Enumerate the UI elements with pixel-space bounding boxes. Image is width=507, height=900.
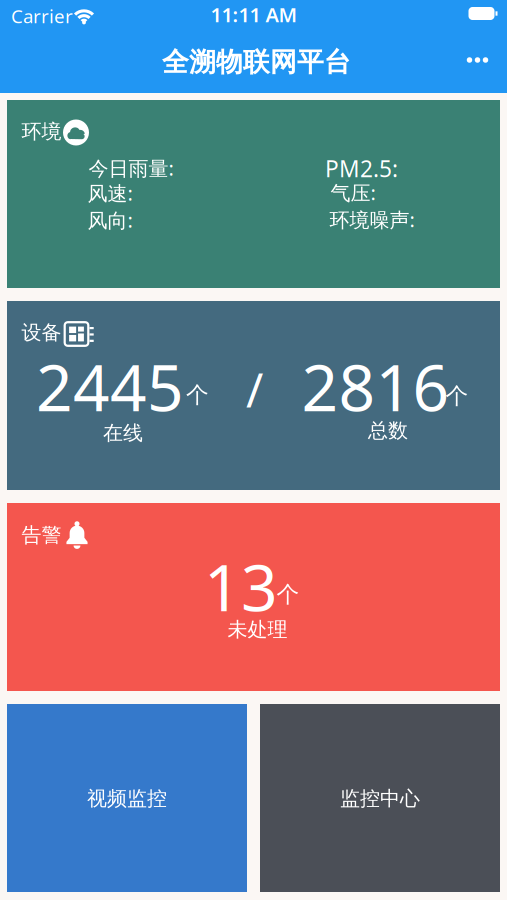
staticText: Carrier	[11, 4, 73, 28]
staticText: 在线	[103, 421, 143, 445]
staticText: 气压:	[330, 179, 375, 206]
staticText: 11:11 AM	[210, 1, 297, 28]
staticText: /	[246, 358, 263, 420]
staticText: 未处理	[227, 617, 287, 642]
staticText: 13	[204, 544, 278, 629]
staticText: 环境噪声:	[329, 206, 414, 233]
staticText: 2445	[36, 344, 184, 429]
staticText: 2816	[301, 344, 449, 429]
staticText: 视频监控	[87, 786, 167, 811]
staticText: 全溯物联网平台	[162, 46, 351, 78]
staticText: 风向:	[87, 207, 132, 233]
staticText: 个	[276, 581, 299, 608]
staticText: 今日雨量:	[88, 155, 173, 181]
button[interactable]: More	[457, 45, 498, 75]
staticText: 个	[445, 382, 468, 410]
staticText: 总数	[368, 418, 408, 443]
staticText: 环境	[21, 119, 61, 144]
staticText: PM2.5:	[325, 153, 398, 183]
staticText: 风速:	[87, 180, 132, 206]
staticText: 设备	[21, 320, 61, 345]
staticText: 个	[186, 381, 209, 409]
staticText: 告警	[21, 523, 61, 547]
button[interactable]: 视频监控	[7, 704, 247, 892]
button[interactable]: 监控中心	[260, 704, 500, 892]
staticText: 监控中心	[340, 786, 420, 811]
